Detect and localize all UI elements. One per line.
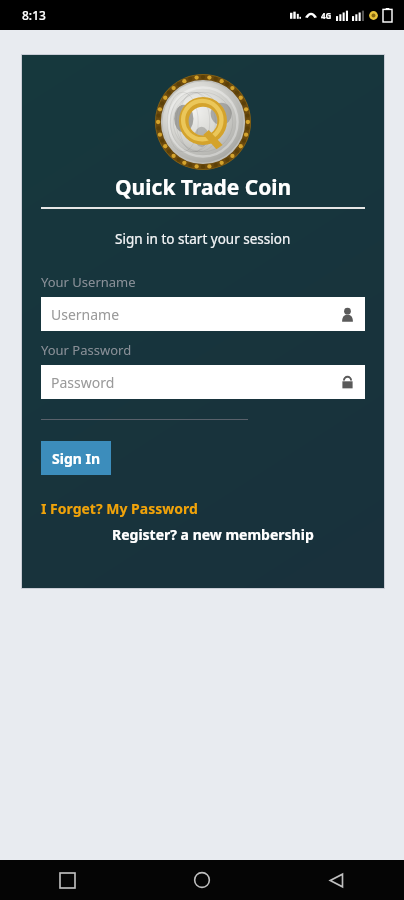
staticText: 4G (321, 10, 332, 21)
staticText: Username (51, 305, 340, 324)
staticText: Your Username (41, 273, 136, 291)
button[interactable]: Register? a new membership (41, 525, 365, 544)
button[interactable]: Home (134, 860, 269, 900)
button[interactable]: I Forget? My Password (41, 499, 198, 518)
button[interactable]: Recents (0, 860, 134, 900)
other: Password (340, 375, 355, 390)
staticText: Sign In (52, 449, 101, 468)
staticText: I Forget? My Password (41, 499, 198, 518)
staticText: Sign in to start your session (115, 230, 291, 248)
button[interactable]: Back (269, 860, 404, 900)
staticText: Your Password (41, 341, 132, 359)
button[interactable]: Username (41, 297, 365, 331)
staticText: Register? a new membership (112, 525, 314, 544)
staticText: Password (51, 373, 340, 392)
other: Username (340, 307, 355, 322)
staticText: 8:13 (22, 7, 46, 23)
button[interactable]: Sign In (41, 441, 111, 475)
button[interactable]: Password (41, 365, 365, 399)
staticText: Quick Trade Coin (115, 173, 292, 202)
